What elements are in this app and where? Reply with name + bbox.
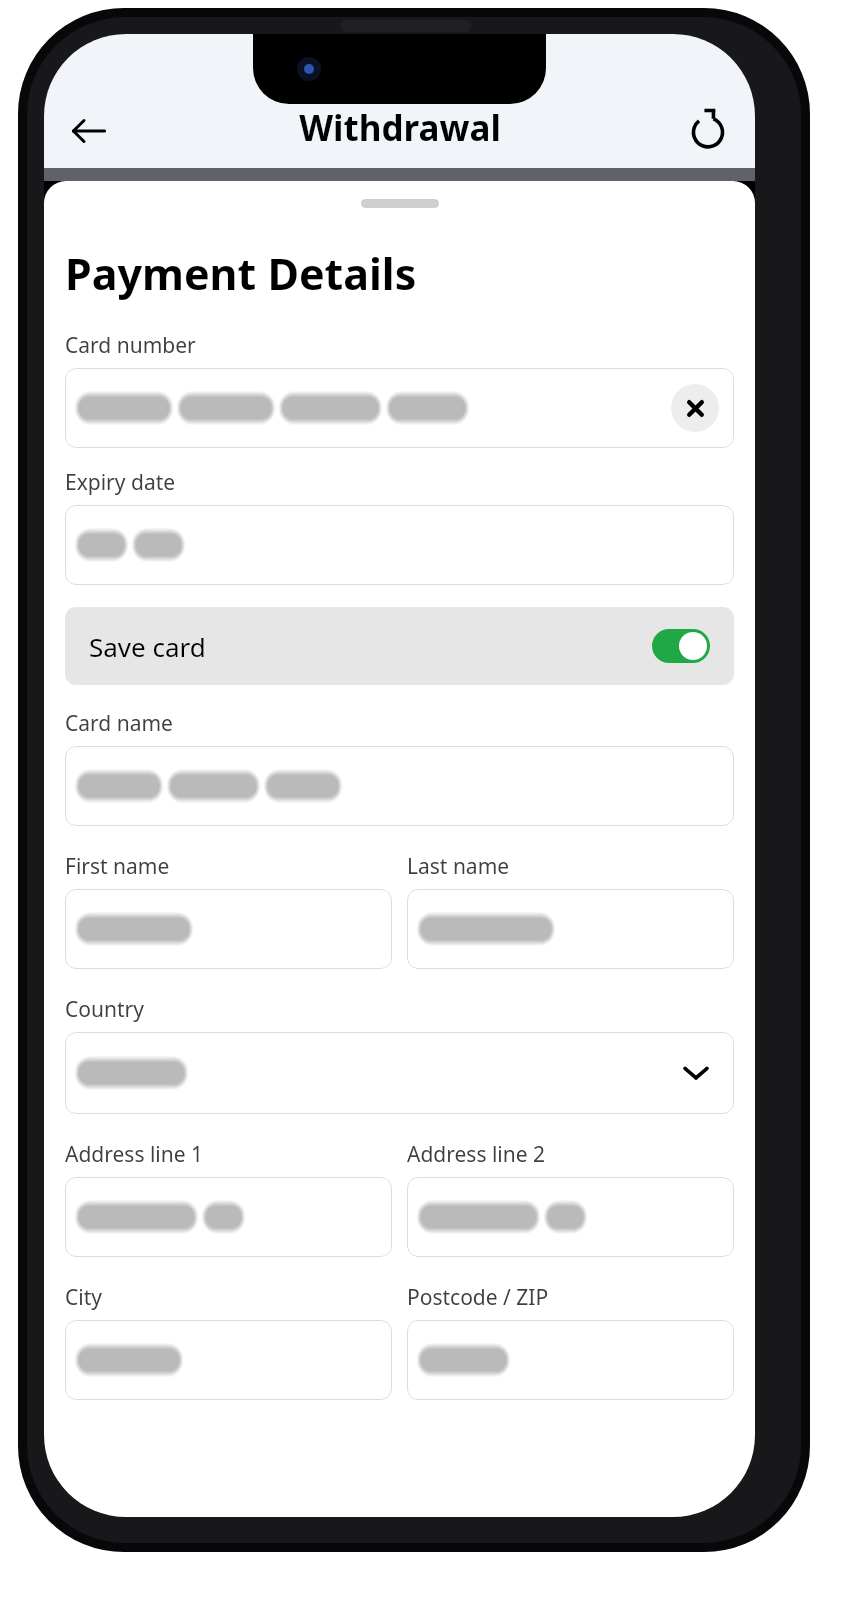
button[interactable]: Refresh: [679, 102, 737, 160]
button[interactable]: [407, 1320, 734, 1400]
button[interactable]: [407, 889, 734, 969]
button[interactable]: [65, 746, 734, 826]
staticText: Last name: [407, 852, 510, 881]
staticText: Expiry date: [65, 468, 176, 497]
staticText: Country: [65, 995, 144, 1024]
staticText: Address line 2: [407, 1140, 546, 1169]
staticText: Save card: [89, 629, 206, 664]
button[interactable]: [65, 1320, 392, 1400]
button[interactable]: Clear card number: [65, 368, 734, 448]
staticText: City: [65, 1283, 102, 1312]
staticText: Postcode / ZIP: [407, 1283, 549, 1312]
button[interactable]: Select country: [65, 1032, 734, 1114]
staticText: First name: [65, 852, 170, 881]
button[interactable]: [65, 505, 734, 585]
staticText: Address line 1: [65, 1140, 204, 1169]
button[interactable]: Select country: [675, 1052, 717, 1094]
button[interactable]: Clear card number: [671, 384, 719, 432]
staticText: Payment Details: [65, 244, 417, 303]
staticText: Card name: [65, 709, 173, 738]
staticText: Card number: [65, 331, 196, 360]
button[interactable]: [407, 1177, 734, 1257]
button[interactable]: Save card: [65, 607, 734, 685]
staticText: Withdrawal: [299, 104, 501, 152]
button[interactable]: Back: [60, 102, 118, 160]
button[interactable]: [65, 889, 392, 969]
button[interactable]: [65, 1177, 392, 1257]
